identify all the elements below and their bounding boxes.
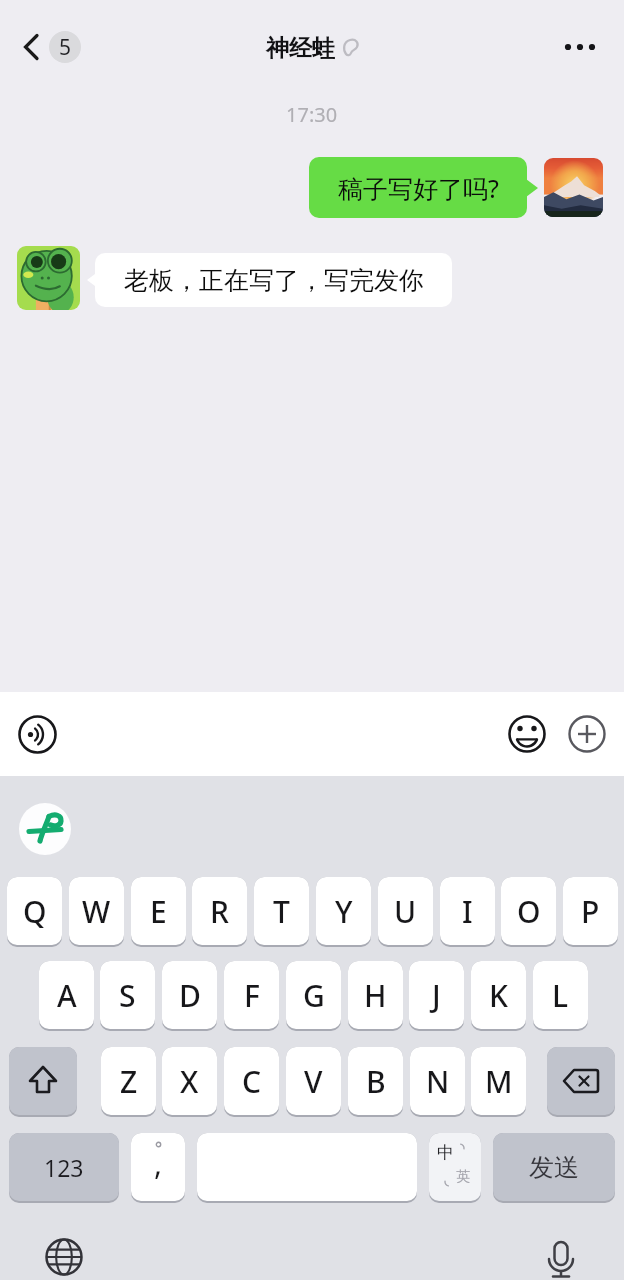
staticText: K <box>489 975 508 1016</box>
staticText: Q <box>23 891 47 932</box>
button[interactable]: F <box>224 961 279 1031</box>
staticText: G <box>303 975 325 1016</box>
button[interactable]: 发送 <box>493 1133 615 1203</box>
button[interactable]: D <box>162 961 217 1031</box>
staticText: V <box>304 1061 323 1102</box>
staticText: W <box>82 891 111 932</box>
staticText: 发送 <box>529 1152 579 1183</box>
button[interactable]: H <box>348 961 403 1031</box>
button[interactable]: N <box>410 1047 465 1117</box>
staticText: F <box>244 975 260 1016</box>
button[interactable]: V <box>286 1047 341 1117</box>
staticText: O <box>517 891 541 932</box>
button[interactable] <box>22 34 42 60</box>
button[interactable] <box>547 1047 615 1117</box>
staticText: Y <box>335 891 353 932</box>
staticText: M <box>485 1061 513 1102</box>
button[interactable]: B <box>348 1047 403 1117</box>
staticText: S <box>119 975 136 1016</box>
staticText: L <box>552 975 569 1016</box>
button[interactable]: Y <box>316 877 371 947</box>
staticText: B <box>366 1061 386 1102</box>
button[interactable]: W <box>69 877 124 947</box>
staticText: , <box>154 1143 163 1184</box>
button[interactable] <box>197 1133 417 1203</box>
button[interactable]: G <box>286 961 341 1031</box>
button[interactable]: O <box>501 877 556 947</box>
staticText: 5 <box>59 33 72 62</box>
button[interactable]: 5 <box>49 31 81 63</box>
staticText: I <box>462 891 473 932</box>
button[interactable]: L <box>533 961 588 1031</box>
button[interactable]: S <box>100 961 155 1031</box>
button[interactable]: E <box>131 877 186 947</box>
staticText: 中 <box>437 1142 454 1163</box>
staticText: 英 <box>456 1168 470 1186</box>
button[interactable]: 123 <box>9 1133 119 1203</box>
button[interactable]: U <box>378 877 433 947</box>
button[interactable]: X <box>162 1047 217 1117</box>
staticText: J <box>432 975 441 1016</box>
button[interactable]: M <box>471 1047 526 1117</box>
button[interactable]: P <box>563 877 618 947</box>
staticText: Z <box>120 1061 138 1102</box>
button[interactable]: J <box>409 961 464 1031</box>
button[interactable]: Q <box>7 877 62 947</box>
staticText: E <box>150 891 167 932</box>
button[interactable] <box>560 40 600 54</box>
button[interactable]: T <box>254 877 309 947</box>
button[interactable]: 稿子写好了吗? <box>309 157 527 218</box>
button[interactable] <box>508 715 546 753</box>
button[interactable] <box>18 715 57 754</box>
button[interactable]: R <box>192 877 247 947</box>
staticText: T <box>273 891 290 932</box>
button[interactable]: I <box>440 877 495 947</box>
staticText: P <box>581 891 600 932</box>
button[interactable]: 老板，正在写了，写完发你 <box>95 253 452 307</box>
staticText: X <box>180 1061 199 1102</box>
staticText: D <box>179 975 201 1016</box>
button[interactable] <box>9 1047 77 1117</box>
staticText: 稿子写好了吗? <box>338 171 499 205</box>
button[interactable] <box>17 246 80 310</box>
staticText: A <box>57 975 77 1016</box>
button[interactable] <box>19 803 71 855</box>
button[interactable]: 中 <box>429 1133 481 1203</box>
staticText: 123 <box>44 1152 84 1183</box>
staticText: H <box>364 975 387 1016</box>
button[interactable] <box>568 715 606 753</box>
staticText: 17:30 <box>286 101 338 128</box>
button[interactable]: , <box>131 1133 185 1203</box>
button[interactable] <box>45 1238 83 1276</box>
staticText: N <box>426 1061 450 1102</box>
button[interactable]: Z <box>101 1047 156 1117</box>
staticText: C <box>242 1061 262 1102</box>
button[interactable]: A <box>39 961 94 1031</box>
button[interactable] <box>542 1240 580 1280</box>
staticText: U <box>394 891 417 932</box>
button[interactable]: C <box>224 1047 279 1117</box>
staticText: R <box>210 891 229 932</box>
staticText: 神经蛙 <box>266 34 335 63</box>
button[interactable]: K <box>471 961 526 1031</box>
staticText: 老板，正在写了，写完发你 <box>124 265 424 296</box>
button[interactable] <box>544 158 603 217</box>
